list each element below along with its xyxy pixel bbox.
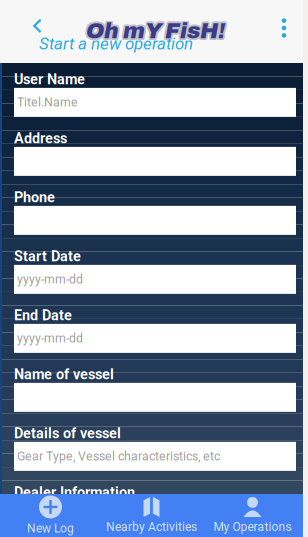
staticText: My Operations <box>213 520 291 534</box>
staticText: Oh mY FisH! <box>87 17 226 41</box>
staticText: Oh mY FisH! <box>84 17 223 41</box>
staticText: Details of vessel <box>14 425 121 442</box>
button[interactable]: My Operations <box>202 494 303 537</box>
button[interactable] <box>14 147 296 176</box>
staticText: User Name <box>14 71 85 88</box>
button[interactable] <box>14 383 296 412</box>
staticText: Oh mY FisH! <box>84 20 223 44</box>
staticText: Titel.Name <box>17 95 78 110</box>
button[interactable] <box>14 206 296 235</box>
staticText: Oh mY FisH! <box>88 19 227 43</box>
staticText: Phone <box>14 189 55 206</box>
staticText: Dealer Information <box>14 484 135 501</box>
staticText: Name of vessel <box>14 366 114 383</box>
staticText: Gear Type, Vessel characteristics, etc <box>17 449 220 464</box>
staticText: Oh mY FisH! <box>86 19 225 43</box>
button[interactable]: More options <box>264 6 304 50</box>
staticText: Oh mY FisH! <box>84 19 223 43</box>
button[interactable]: Titel.Name <box>14 88 296 117</box>
staticText: yyyy-mm-dd <box>17 272 83 287</box>
staticText: Address <box>14 130 67 147</box>
staticText: End Date <box>14 307 72 324</box>
button[interactable]: Gear Type, Vessel characteristics, etc <box>14 442 296 471</box>
staticText: yyyy-mm-dd <box>17 331 83 346</box>
staticText: New Log <box>27 521 74 536</box>
staticText: Nearby Activities <box>106 520 197 534</box>
staticText: Oh mY FisH! <box>87 20 226 44</box>
staticText: Start Date <box>14 248 81 265</box>
staticText: Start a new operation <box>39 34 193 54</box>
button[interactable]: yyyy-mm-dd <box>14 324 296 353</box>
button[interactable]: New Log <box>0 494 101 537</box>
button[interactable]: Back <box>19 4 56 48</box>
button[interactable]: yyyy-mm-dd <box>14 265 296 294</box>
staticText: Oh mY FisH! <box>86 17 225 41</box>
button[interactable]: Nearby Activities <box>101 494 202 537</box>
staticText: Oh mY FisH! <box>86 21 225 45</box>
